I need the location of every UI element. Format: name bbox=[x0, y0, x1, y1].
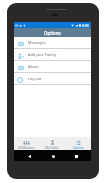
staticText: Add your Family bbox=[28, 52, 57, 57]
button[interactable]: Log out bbox=[14, 73, 91, 85]
button[interactable]: All Members bbox=[14, 137, 39, 150]
button[interactable]: Home bbox=[49, 152, 57, 160]
staticText: Log out bbox=[28, 76, 42, 81]
button[interactable]: Recents bbox=[72, 152, 80, 160]
button[interactable]: About bbox=[14, 61, 91, 73]
staticText: Options bbox=[44, 30, 61, 36]
staticText: Messages bbox=[28, 40, 46, 45]
button[interactable]: Options bbox=[65, 137, 91, 150]
button[interactable]: Messages bbox=[14, 37, 91, 49]
button[interactable]: Back bbox=[25, 152, 33, 160]
staticText: My Profile bbox=[45, 146, 59, 150]
button[interactable]: Add your Family bbox=[14, 49, 91, 61]
staticText: About bbox=[28, 64, 39, 69]
staticText: Options bbox=[73, 146, 84, 150]
staticText: 8:06 bbox=[82, 23, 90, 28]
staticText: All Members bbox=[18, 146, 35, 150]
button[interactable]: My Profile bbox=[39, 137, 65, 150]
